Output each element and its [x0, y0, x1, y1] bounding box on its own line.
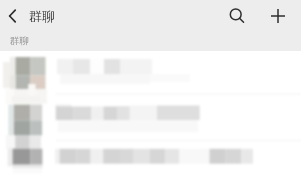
- staticText: 群聊: [29, 8, 55, 24]
- button[interactable]: [0, 142, 301, 176]
- button[interactable]: [0, 51, 301, 94]
- staticText: 群聊: [10, 35, 29, 47]
- button[interactable]: Add: [264, 2, 291, 29]
- button[interactable]: Search: [224, 3, 250, 29]
- button[interactable]: Back: [0, 3, 26, 29]
- button[interactable]: [0, 94, 301, 142]
